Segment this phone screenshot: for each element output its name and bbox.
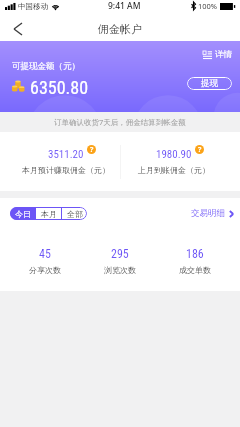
staticText: 交易明细 xyxy=(191,208,225,219)
button[interactable]: 3511.20 xyxy=(12,132,120,191)
button[interactable]: 186 xyxy=(157,229,232,293)
staticText: 6350.80 xyxy=(30,77,89,98)
staticText: 全部 xyxy=(67,209,83,219)
staticText: ? xyxy=(90,145,94,154)
staticText: 295 xyxy=(111,247,129,261)
staticText: 上月到账佣金（元） xyxy=(138,165,210,175)
staticText: 今日 xyxy=(15,209,31,219)
other: Help xyxy=(195,145,204,154)
staticText: 9:41 AM xyxy=(108,0,141,12)
staticText: 详情 xyxy=(215,49,232,60)
button[interactable]: 全部 xyxy=(62,207,87,220)
staticText: 可提现金额（元） xyxy=(12,61,80,72)
staticText: 45 xyxy=(39,247,51,261)
staticText: 提现 xyxy=(201,78,218,89)
staticText: ? xyxy=(198,145,202,154)
staticText: 1980.90 xyxy=(156,148,192,161)
button[interactable]: 交易明细 xyxy=(185,204,240,223)
staticText: 成交单数 xyxy=(179,265,211,275)
staticText: 3511.20 xyxy=(48,148,84,161)
staticText: 分享次数 xyxy=(29,265,61,275)
staticText: 本月预计赚取佣金（元） xyxy=(22,165,110,175)
other: Help xyxy=(87,145,96,154)
staticText: 中国移动 xyxy=(18,2,48,11)
button[interactable]: 详情 xyxy=(200,46,235,63)
staticText: 186 xyxy=(186,247,204,261)
staticText: 本月 xyxy=(41,209,57,219)
staticText: 100% xyxy=(198,1,218,11)
button[interactable]: 295 xyxy=(82,229,157,293)
button[interactable]: 今日 xyxy=(10,207,35,220)
button[interactable]: 45 xyxy=(8,229,82,293)
staticText: 浏览次数 xyxy=(104,265,136,275)
button[interactable]: 提现 xyxy=(187,77,232,90)
button[interactable]: 本月 xyxy=(36,207,61,220)
button[interactable]: Back xyxy=(9,20,27,38)
staticText: 佣金帐户 xyxy=(98,22,142,36)
button[interactable]: 1980.90 xyxy=(120,132,228,191)
staticText: 订单确认收货7天后，佣金结算到帐金额 xyxy=(54,117,186,127)
